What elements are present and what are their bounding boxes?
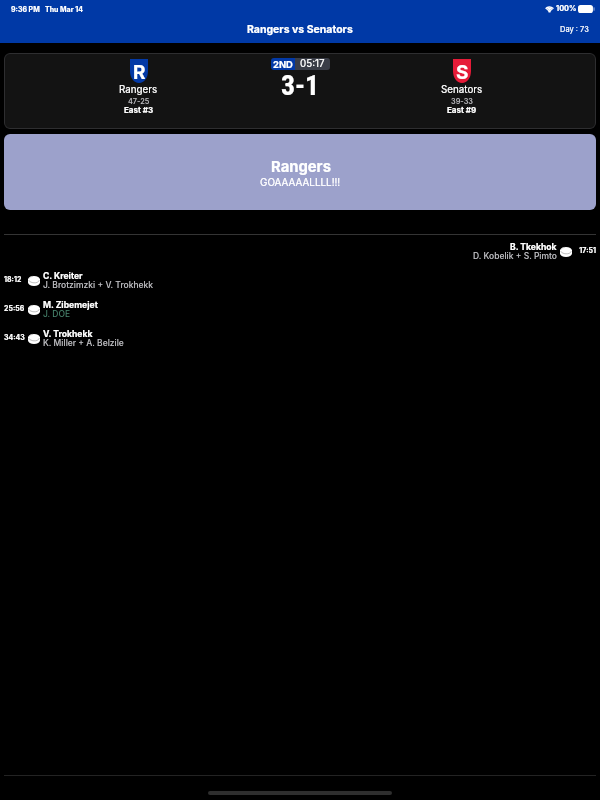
staticText: J. Brotzimzki + V. Trokhekk xyxy=(43,280,154,290)
staticText: 47-25 xyxy=(128,97,150,106)
staticText: 18:12 xyxy=(4,275,28,283)
staticText: K. Miller + A. Belzile xyxy=(43,338,124,348)
staticText: 34:43 xyxy=(4,333,28,341)
staticText: 100% xyxy=(556,4,577,13)
staticText: J. DOE xyxy=(43,309,71,319)
staticText: 39-33 xyxy=(451,97,473,106)
button[interactable]: 18:12 xyxy=(0,266,600,295)
staticText: 9:36 PM xyxy=(11,5,40,13)
staticText: 05:17 xyxy=(300,58,325,70)
staticText: Rangers vs Senators xyxy=(247,23,353,36)
staticText: GOAAAAALLLL!!! xyxy=(260,176,341,188)
button[interactable]: 34:43 xyxy=(0,324,600,353)
staticText: East #9 xyxy=(447,105,477,115)
staticText: Day : 73 xyxy=(560,25,589,34)
staticText: S xyxy=(456,61,469,84)
button[interactable]: R xyxy=(4,53,596,129)
staticText: D. Kobelik + S. Pimto xyxy=(473,251,557,261)
staticText: Rangers xyxy=(271,158,331,176)
staticText: 25:56 xyxy=(4,304,28,312)
staticText: R xyxy=(133,61,146,84)
staticText: Rangers xyxy=(119,84,158,96)
staticText: M. Zibemejet xyxy=(43,300,98,310)
staticText: Thu Mar 14 xyxy=(45,5,83,13)
button[interactable]: Rangers xyxy=(4,134,596,210)
staticText: V. Trokhekk xyxy=(43,329,93,339)
staticText: C. Kreiter xyxy=(43,271,83,281)
button[interactable]: B. Tkekhok xyxy=(0,237,600,266)
button[interactable]: 25:56 xyxy=(0,295,600,324)
staticText: B. Tkekhok xyxy=(510,242,557,252)
other: Wi-Fi xyxy=(545,5,554,12)
staticText: 2ND xyxy=(273,59,293,70)
other: Battery 100% xyxy=(578,5,595,13)
staticText: 17:51 xyxy=(572,246,596,254)
staticText: Senators xyxy=(441,84,483,96)
staticText: 3-1 xyxy=(281,69,320,102)
staticText: East #3 xyxy=(124,105,154,115)
